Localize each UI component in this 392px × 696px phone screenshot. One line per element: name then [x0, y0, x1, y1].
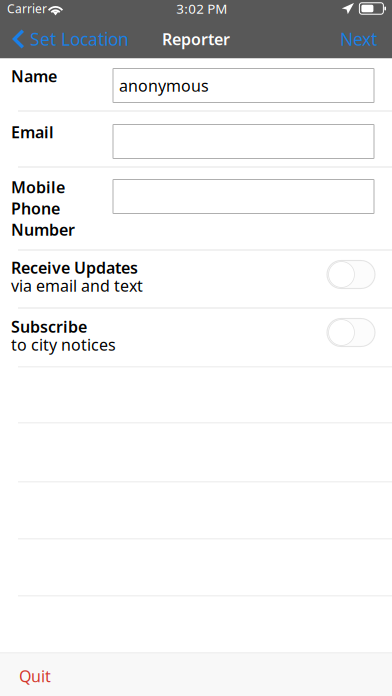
staticText: via email and text — [11, 275, 143, 296]
staticText: Reporter — [162, 28, 230, 50]
button[interactable]: Toggle — [327, 318, 375, 346]
button[interactable]: Text field — [113, 124, 374, 158]
button[interactable]: Quit — [0, 653, 392, 696]
button[interactable]: Set Location — [0, 19, 137, 58]
staticText: Carrier — [7, 0, 47, 16]
staticText: Quit — [19, 665, 51, 687]
staticText: Email — [11, 121, 54, 143]
staticText: Receive Updates — [11, 257, 138, 278]
button[interactable]: Toggle — [327, 260, 375, 288]
staticText: Set Location — [30, 27, 129, 50]
staticText: to city notices — [11, 334, 116, 355]
button[interactable]: Text field — [113, 179, 374, 213]
staticText: 3:02 PM — [176, 0, 227, 17]
staticText: Mobile — [11, 176, 65, 198]
staticText: Name — [11, 65, 57, 87]
staticText: Number — [11, 219, 75, 240]
staticText: anonymous — [119, 75, 209, 96]
staticText: Phone — [11, 198, 60, 219]
staticText: Subscribe — [11, 316, 87, 337]
button[interactable]: Next — [328, 19, 392, 58]
button[interactable]: Text field — [113, 68, 374, 102]
staticText: Next — [340, 27, 377, 50]
